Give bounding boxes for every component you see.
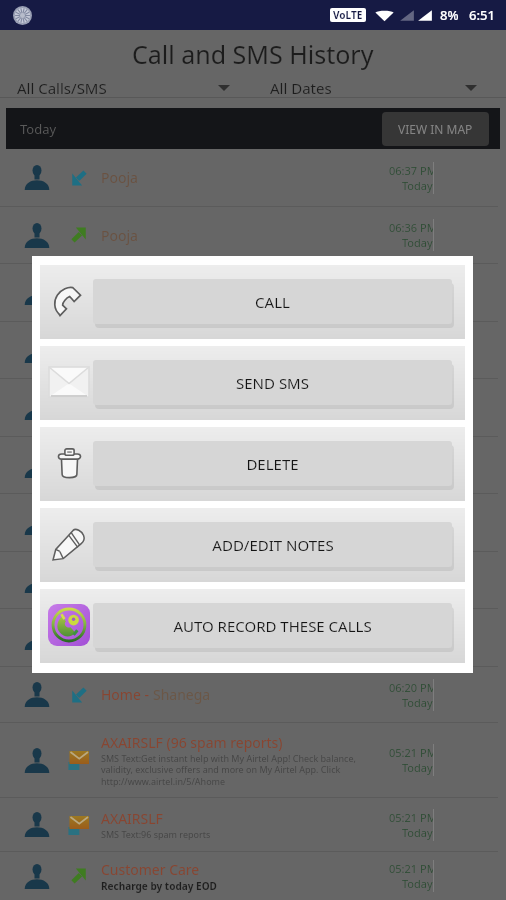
staticText: Pooja <box>101 226 138 245</box>
staticText: Shanega <box>153 685 211 704</box>
staticText: AUTO RECORD THESE CALLS <box>173 616 372 636</box>
staticText: CALL <box>255 292 290 312</box>
staticText: Today <box>402 876 433 891</box>
staticText: Pooja <box>101 168 138 187</box>
staticText: 05:21 PM <box>389 861 433 876</box>
staticText: All Dates <box>270 78 332 98</box>
staticText: Pooja <box>101 341 138 360</box>
staticText: VIEW IN MAP <box>398 121 473 137</box>
button[interactable]: VIEW IN MAP <box>382 112 489 146</box>
button[interactable]: Pooja <box>0 552 506 609</box>
button[interactable]: Home - <box>0 667 506 723</box>
button[interactable]: Pooja <box>0 494 506 552</box>
staticText: 06:36 PM <box>389 220 433 235</box>
staticText: Recharge by today EOD <box>101 879 217 893</box>
staticText: Today <box>402 580 433 595</box>
staticText: Today <box>402 760 433 775</box>
button[interactable]: Pooja <box>0 609 506 667</box>
staticText: 06:26 PM <box>389 393 433 408</box>
staticText: Today <box>402 825 433 840</box>
staticText: 06:22 PM <box>389 508 433 523</box>
staticText: 6:51 <box>469 6 495 24</box>
button[interactable]: All Calls/SMS <box>0 78 253 98</box>
staticText: 06:28 PM <box>389 335 433 350</box>
staticText: 05:21 PM <box>389 810 433 825</box>
button[interactable]: CALL <box>40 265 465 339</box>
staticText: Today <box>402 178 433 193</box>
button[interactable]: SEND SMS <box>40 346 465 420</box>
staticText: VoLTE <box>333 8 363 22</box>
staticText: Today <box>402 408 433 423</box>
button[interactable]: All Dates <box>253 78 506 98</box>
staticText: SMS Text:Get instant help with My Airtel… <box>101 752 356 788</box>
staticText: AXAIRSLF (96 spam reports) <box>101 733 283 752</box>
staticText: Pooja <box>101 398 138 417</box>
staticText: Today <box>402 638 433 653</box>
staticText: DELETE <box>246 454 299 474</box>
staticText: 06:21 PM <box>389 565 433 580</box>
button[interactable]: ADD/EDIT NOTES <box>40 508 465 582</box>
staticText: 06:30 PM <box>389 278 433 293</box>
staticText: Home - <box>101 685 153 704</box>
staticText: SEND SMS <box>236 373 309 393</box>
staticText: All Calls/SMS <box>17 78 107 98</box>
button[interactable]: Pooja <box>0 379 506 437</box>
button[interactable]: AXAIRSLF (96 spam reports) <box>0 723 506 798</box>
button[interactable]: Pooja <box>0 264 506 322</box>
staticText: SMS Text:96 spam reports <box>101 828 211 840</box>
staticText: AXAIRSLF <box>101 809 163 828</box>
staticText: Today <box>402 350 433 365</box>
button[interactable]: AXAIRSLF <box>0 798 506 852</box>
button[interactable]: Pooja <box>0 322 506 379</box>
staticText: 06:37 PM <box>389 163 433 178</box>
staticText: Today <box>402 235 433 250</box>
staticText: Pooja <box>101 513 138 532</box>
button[interactable]: AUTO RECORD THESE CALLS <box>40 589 465 663</box>
staticText: Today <box>402 695 433 710</box>
staticText: Pooja <box>101 571 138 590</box>
staticText: Call and SMS History <box>132 37 374 71</box>
button[interactable]: DELETE <box>40 427 465 501</box>
button[interactable]: Customer Care <box>0 852 506 900</box>
button[interactable]: Pooja <box>0 149 506 207</box>
staticText: 05:21 PM <box>389 745 433 760</box>
staticText: 06:20 PM <box>389 680 433 695</box>
staticText: ADD/EDIT NOTES <box>212 535 334 555</box>
button[interactable]: Pooja <box>0 437 506 494</box>
staticText: Customer Care <box>101 860 200 879</box>
button[interactable]: Pooja <box>0 207 506 264</box>
staticText: Today <box>20 120 57 138</box>
staticText: 8% <box>440 6 459 24</box>
